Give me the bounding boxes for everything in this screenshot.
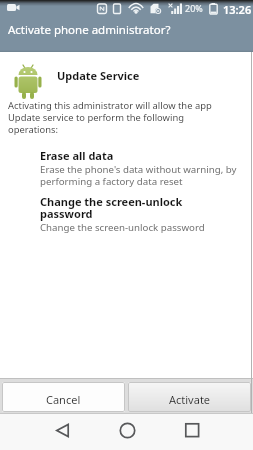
staticText: Update Service bbox=[57, 68, 140, 83]
button[interactable] bbox=[172, 415, 212, 445]
button[interactable] bbox=[42, 415, 82, 445]
button[interactable]: Cancel bbox=[2, 382, 125, 412]
staticText: Activate phone administrator? bbox=[8, 22, 171, 38]
staticText: Change the screen-unlock password bbox=[40, 221, 205, 234]
staticText: Activating this administrator will allow… bbox=[8, 99, 212, 136]
staticText: 13:26 bbox=[223, 2, 252, 14]
staticText: Activate bbox=[169, 392, 211, 407]
staticText: Cancel bbox=[46, 392, 81, 407]
button[interactable]: Activate bbox=[128, 382, 251, 412]
staticText: Erase all data bbox=[40, 148, 114, 163]
staticText: Erase the phone's data without warning, … bbox=[40, 163, 237, 187]
button[interactable] bbox=[107, 415, 147, 445]
staticText: 20% bbox=[185, 2, 203, 14]
staticText: Change the screen-unlock password bbox=[40, 194, 183, 221]
